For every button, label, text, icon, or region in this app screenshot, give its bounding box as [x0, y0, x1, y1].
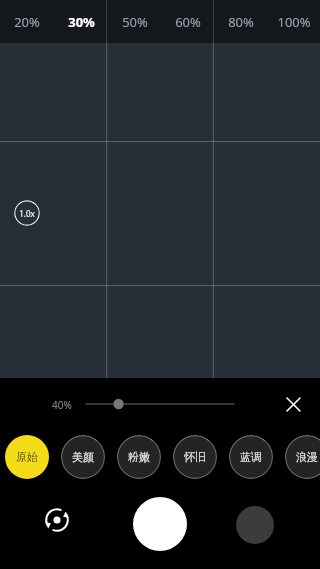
- button[interactable]: 浪漫: [285, 435, 320, 479]
- button[interactable]: 50%: [108, 0, 161, 43]
- button[interactable]: 美颜: [61, 435, 105, 479]
- button[interactable]: Intensity slider: [80, 392, 250, 416]
- button[interactable]: 80%: [214, 0, 267, 43]
- staticText: 蓝调: [240, 450, 262, 464]
- button[interactable]: Close: [279, 390, 307, 418]
- button[interactable]: 原始: [5, 435, 49, 479]
- button[interactable]: 怀旧: [173, 435, 217, 479]
- button[interactable]: 100%: [267, 0, 320, 43]
- button[interactable]: 粉嫩: [117, 435, 161, 479]
- staticText: 60%: [175, 13, 201, 31]
- staticText: 浪漫: [296, 450, 318, 464]
- button[interactable]: 60%: [161, 0, 214, 43]
- button[interactable]: 20%: [0, 0, 54, 43]
- button[interactable]: 30%: [54, 0, 108, 43]
- staticText: 20%: [14, 13, 40, 31]
- staticText: 30%: [68, 13, 95, 31]
- button[interactable]: Zoom level 1.0x: [14, 200, 40, 226]
- staticText: 美颜: [72, 450, 94, 464]
- button[interactable]: 蓝调: [229, 435, 273, 479]
- staticText: 粉嫩: [128, 450, 150, 464]
- staticText: 原始: [16, 450, 38, 464]
- button[interactable]: Gallery: [236, 506, 274, 544]
- staticText: 80%: [228, 13, 254, 31]
- button[interactable]: Switch camera: [37, 500, 77, 540]
- staticText: 怀旧: [184, 450, 206, 464]
- staticText: 100%: [277, 13, 311, 31]
- staticText: 50%: [122, 13, 148, 31]
- staticText: 1.0x: [19, 208, 35, 219]
- button[interactable]: Shutter: [133, 497, 187, 551]
- staticText: 40%: [52, 398, 72, 412]
